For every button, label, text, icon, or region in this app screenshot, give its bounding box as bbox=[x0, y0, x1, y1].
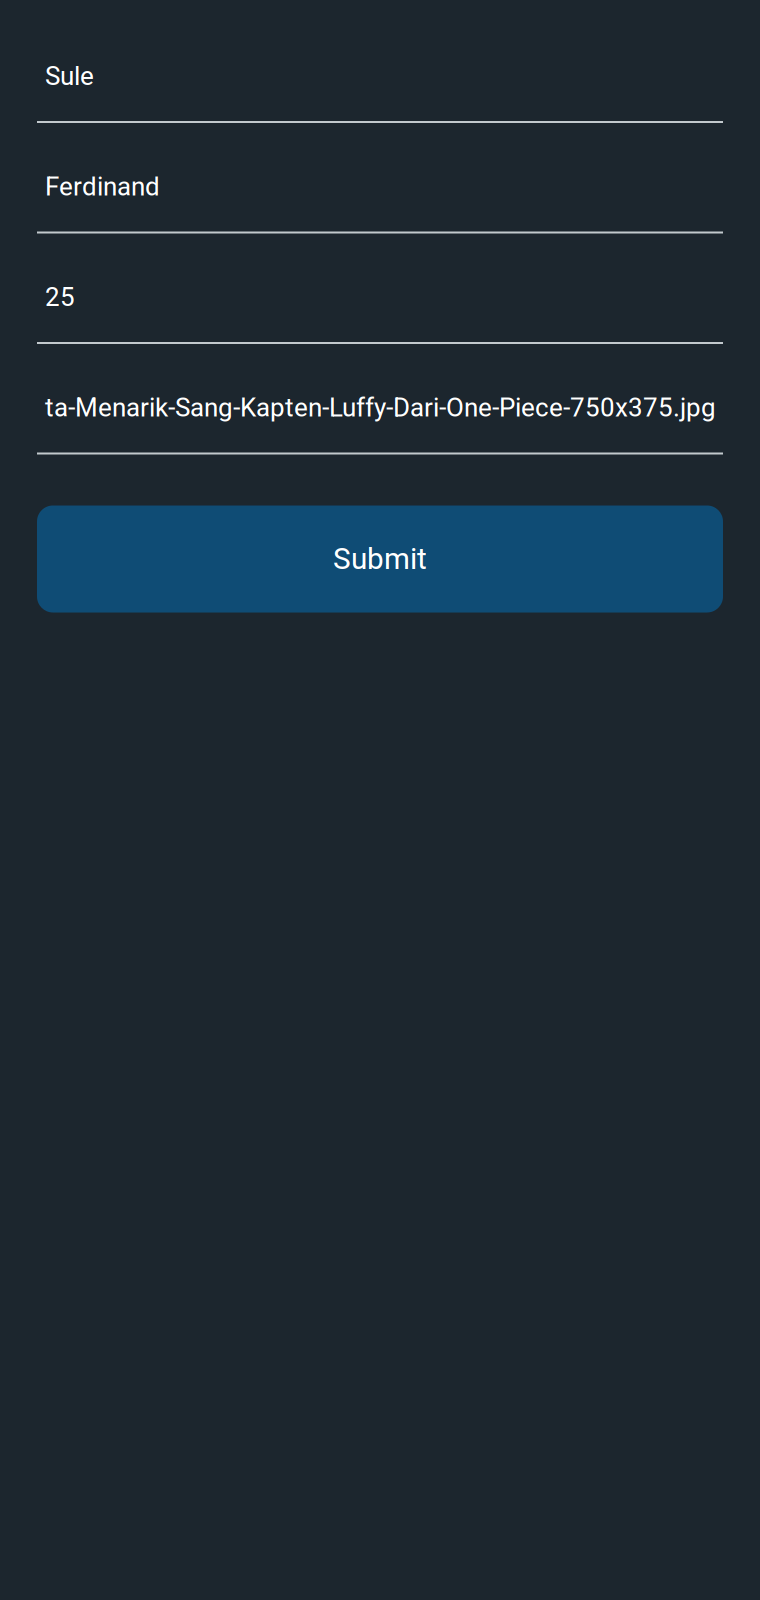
staticText: Sule bbox=[45, 61, 94, 91]
button[interactable]: 25 bbox=[37, 282, 723, 344]
button[interactable]: Sule bbox=[37, 61, 723, 123]
button[interactable]: ta-Menarik-Sang-Kapten-Luffy-Dari-One-Pi… bbox=[37, 392, 723, 454]
staticText: Submit bbox=[333, 542, 427, 576]
button[interactable]: Ferdinand bbox=[37, 171, 723, 233]
staticText: Ferdinand bbox=[45, 171, 160, 202]
button[interactable]: Submit bbox=[37, 505, 723, 612]
staticText: 25 bbox=[45, 282, 75, 312]
staticText: ta-Menarik-Sang-Kapten-Luffy-Dari-One-Pi… bbox=[45, 392, 716, 423]
